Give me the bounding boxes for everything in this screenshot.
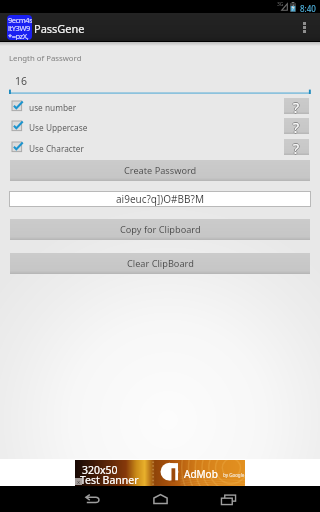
staticText: x [77, 478, 81, 485]
staticText: Use Character [29, 143, 84, 154]
staticText: by Google [223, 472, 245, 478]
button[interactable]: Copy for Clipboard [10, 219, 310, 240]
button[interactable]: use number [0, 97, 320, 117]
button[interactable]: Clear ClipBoard [10, 253, 310, 274]
button[interactable]: Close ad [75, 478, 82, 485]
staticText: ? [293, 119, 300, 135]
staticText: ? [293, 99, 300, 115]
button[interactable]: App icon [7, 15, 32, 40]
staticText: ? [294, 118, 301, 134]
staticText: ? [293, 117, 300, 133]
button[interactable]: Help [284, 139, 309, 155]
staticText: 320x50 [82, 463, 118, 477]
button[interactable]: Advertisement [75, 460, 245, 486]
staticText: ? [293, 118, 300, 134]
staticText: Length of Password [9, 53, 82, 64]
staticText: 3G [277, 1, 284, 8]
staticText: ai9euc?q])O#BB?M [116, 192, 204, 206]
staticText: ? [293, 140, 300, 156]
staticText: Copy for Clipboard [120, 223, 201, 236]
staticText: use number [29, 102, 77, 113]
staticText: Test Banner [80, 473, 139, 486]
staticText: Create Password [124, 164, 197, 177]
staticText: ? [293, 138, 300, 154]
staticText: ? [293, 97, 300, 113]
button[interactable]: More options [292, 13, 316, 41]
staticText: Clear ClipBoard [127, 257, 194, 270]
button[interactable]: Help [284, 118, 309, 134]
staticText: ? [292, 98, 299, 114]
button[interactable]: Back [74, 486, 110, 512]
staticText: PassGene [34, 21, 85, 36]
button[interactable]: Use Uppercase [0, 117, 320, 137]
staticText: Use Uppercase [29, 122, 88, 133]
button[interactable]: Help [284, 98, 309, 114]
staticText: ? [293, 139, 300, 155]
button[interactable]: Recent apps [210, 486, 246, 512]
button[interactable]: Create Password [10, 160, 310, 181]
staticText: ? [293, 98, 300, 114]
button[interactable]: Use Character [0, 138, 320, 158]
staticText: ? [294, 98, 301, 114]
button[interactable]: ai9euc?q])O#BB?M [10, 192, 310, 206]
button[interactable]: Home [142, 486, 178, 512]
staticText: *=pzX, [8, 31, 29, 40]
staticText: ? [292, 139, 299, 155]
staticText: AdMob [184, 467, 218, 481]
staticText: 8:40 [300, 3, 316, 14]
staticText: 16 [15, 74, 28, 88]
staticText: ? [292, 118, 299, 134]
staticText: ? [294, 139, 301, 155]
staticText: 9ecm4s [8, 15, 32, 25]
staticText: ltY3W9 [8, 23, 30, 33]
